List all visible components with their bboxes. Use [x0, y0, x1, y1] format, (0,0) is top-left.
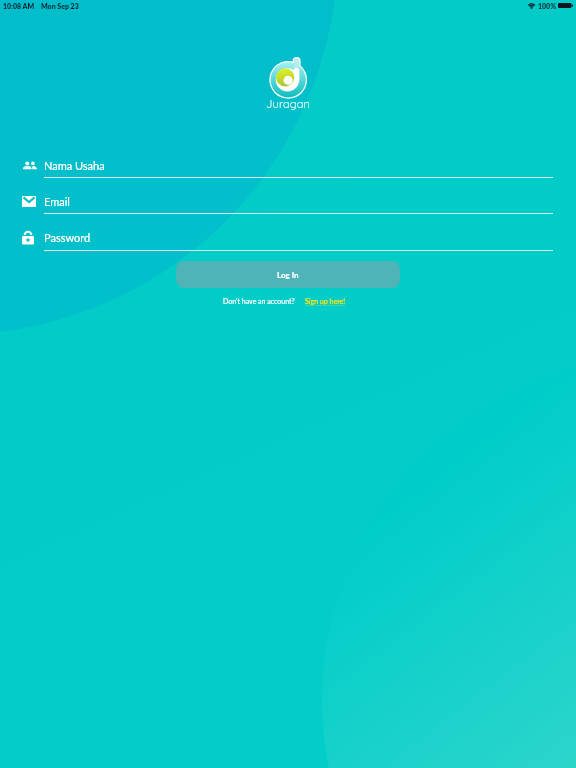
staticText: 10:08 AM [3, 2, 35, 10]
staticText: Mon Sep 23 [41, 2, 79, 10]
button[interactable]: Email [44, 195, 553, 217]
button[interactable]: Sign up here! [305, 297, 346, 305]
button[interactable]: Log In [176, 261, 400, 288]
staticText: Sign up here! [305, 297, 346, 305]
staticText: Log In [277, 270, 299, 280]
staticText: Password [44, 231, 91, 244]
staticText: Don't have an account? [223, 297, 295, 305]
button[interactable]: Password [44, 231, 553, 253]
staticText: Juragan [266, 97, 311, 111]
staticText: Nama Usaha [44, 159, 105, 172]
staticText: Email [44, 195, 70, 208]
staticText: 100% [538, 2, 557, 10]
button[interactable]: Nama Usaha [44, 159, 553, 181]
